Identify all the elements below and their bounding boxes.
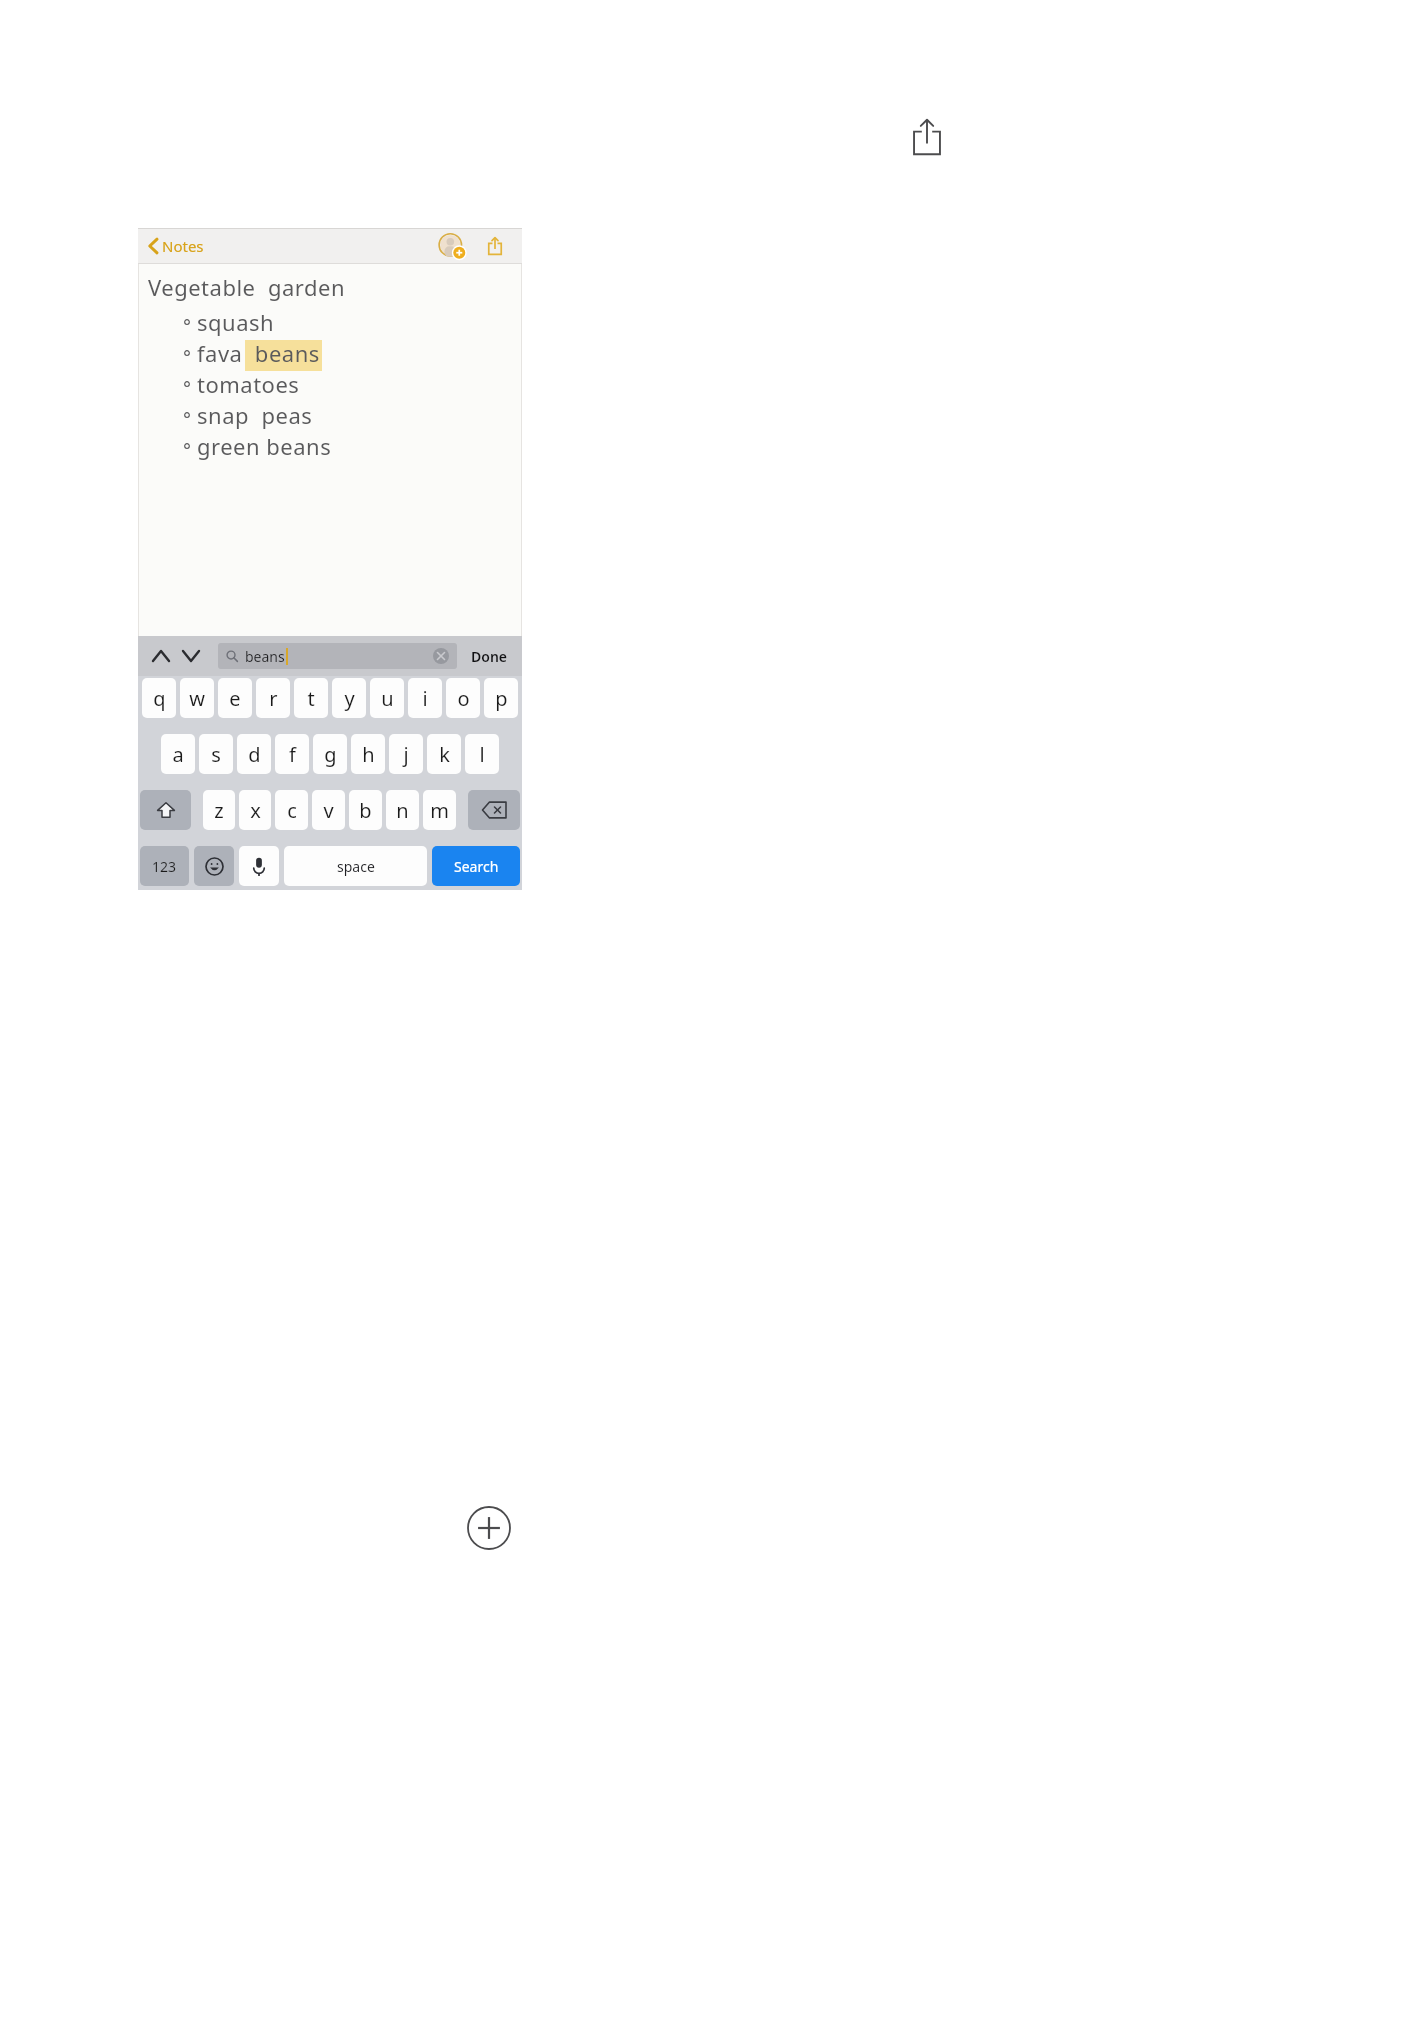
button[interactable]: Add people	[438, 232, 466, 260]
staticText: o	[457, 685, 470, 712]
button[interactable]: space	[284, 846, 427, 886]
staticText: n	[396, 797, 409, 824]
button[interactable]: u	[370, 678, 404, 718]
button[interactable]: beans	[218, 643, 457, 669]
staticText: f	[289, 741, 296, 768]
button[interactable]: Share note	[482, 233, 508, 259]
staticText: squash	[197, 307, 275, 337]
button[interactable]: q	[142, 678, 176, 718]
button[interactable]: d	[237, 734, 271, 774]
button[interactable]: Next result	[178, 643, 204, 669]
button[interactable]: Notes	[144, 232, 208, 260]
button[interactable]: Add	[466, 1505, 512, 1551]
staticText: 123	[152, 857, 177, 876]
staticText: r	[269, 685, 278, 712]
staticText: l	[479, 741, 485, 768]
staticText: snap peas	[197, 400, 313, 430]
button[interactable]: Search	[432, 846, 520, 886]
staticText: a	[172, 741, 184, 768]
button[interactable]: o	[446, 678, 480, 718]
button[interactable]: p	[484, 678, 518, 718]
staticText: u	[381, 685, 394, 712]
button[interactable]: Backspace	[468, 790, 520, 830]
button[interactable]: x	[239, 790, 271, 830]
staticText: d	[248, 741, 261, 768]
staticText: g	[324, 741, 337, 768]
staticText: Search	[454, 857, 499, 876]
staticText: Notes	[162, 236, 204, 256]
staticText: green beans	[197, 431, 332, 461]
staticText: i	[422, 685, 428, 712]
staticText: fava beans	[197, 338, 320, 368]
staticText: z	[214, 797, 224, 824]
button[interactable]: g	[313, 734, 347, 774]
staticText: b	[359, 797, 372, 824]
button[interactable]: Clear search	[433, 648, 449, 664]
staticText: tomatoes	[197, 369, 300, 399]
staticText: m	[430, 797, 449, 824]
staticText: q	[153, 685, 166, 712]
staticText: k	[439, 741, 450, 768]
staticText: Vegetable garden	[148, 272, 345, 302]
button[interactable]: m	[423, 790, 456, 830]
staticText: Done	[471, 647, 508, 666]
button[interactable]: h	[351, 734, 385, 774]
staticText: t	[307, 685, 315, 712]
button[interactable]: a	[161, 734, 195, 774]
staticText: w	[189, 685, 205, 712]
staticText: y	[344, 685, 355, 712]
staticText: s	[211, 741, 221, 768]
button[interactable]: 123	[140, 846, 189, 886]
button[interactable]: z	[203, 790, 235, 830]
staticText: h	[362, 741, 375, 768]
staticText: p	[495, 685, 508, 712]
button[interactable]: Share	[900, 110, 954, 164]
button[interactable]: Emoji	[194, 846, 234, 886]
button[interactable]: f	[275, 734, 309, 774]
staticText: c	[287, 797, 297, 824]
button[interactable]: k	[427, 734, 461, 774]
button[interactable]: y	[332, 678, 366, 718]
staticText: space	[337, 857, 375, 876]
button[interactable]: t	[294, 678, 328, 718]
staticText: beans	[245, 647, 285, 666]
staticText: x	[250, 797, 261, 824]
staticText: v	[323, 797, 334, 824]
staticText: e	[229, 685, 241, 712]
button[interactable]: Previous result	[148, 643, 174, 669]
button[interactable]: b	[349, 790, 382, 830]
button[interactable]: j	[389, 734, 423, 774]
button[interactable]: n	[386, 790, 419, 830]
button[interactable]: w	[180, 678, 214, 718]
staticText: j	[403, 741, 409, 768]
button[interactable]: c	[275, 790, 308, 830]
button[interactable]: r	[256, 678, 290, 718]
button[interactable]: v	[312, 790, 345, 830]
button[interactable]: s	[199, 734, 233, 774]
button[interactable]: i	[408, 678, 442, 718]
button[interactable]: e	[218, 678, 252, 718]
button[interactable]: Dictate	[239, 846, 279, 886]
button[interactable]: l	[465, 734, 499, 774]
button[interactable]: Shift	[140, 790, 191, 830]
button[interactable]: Done	[467, 643, 512, 670]
